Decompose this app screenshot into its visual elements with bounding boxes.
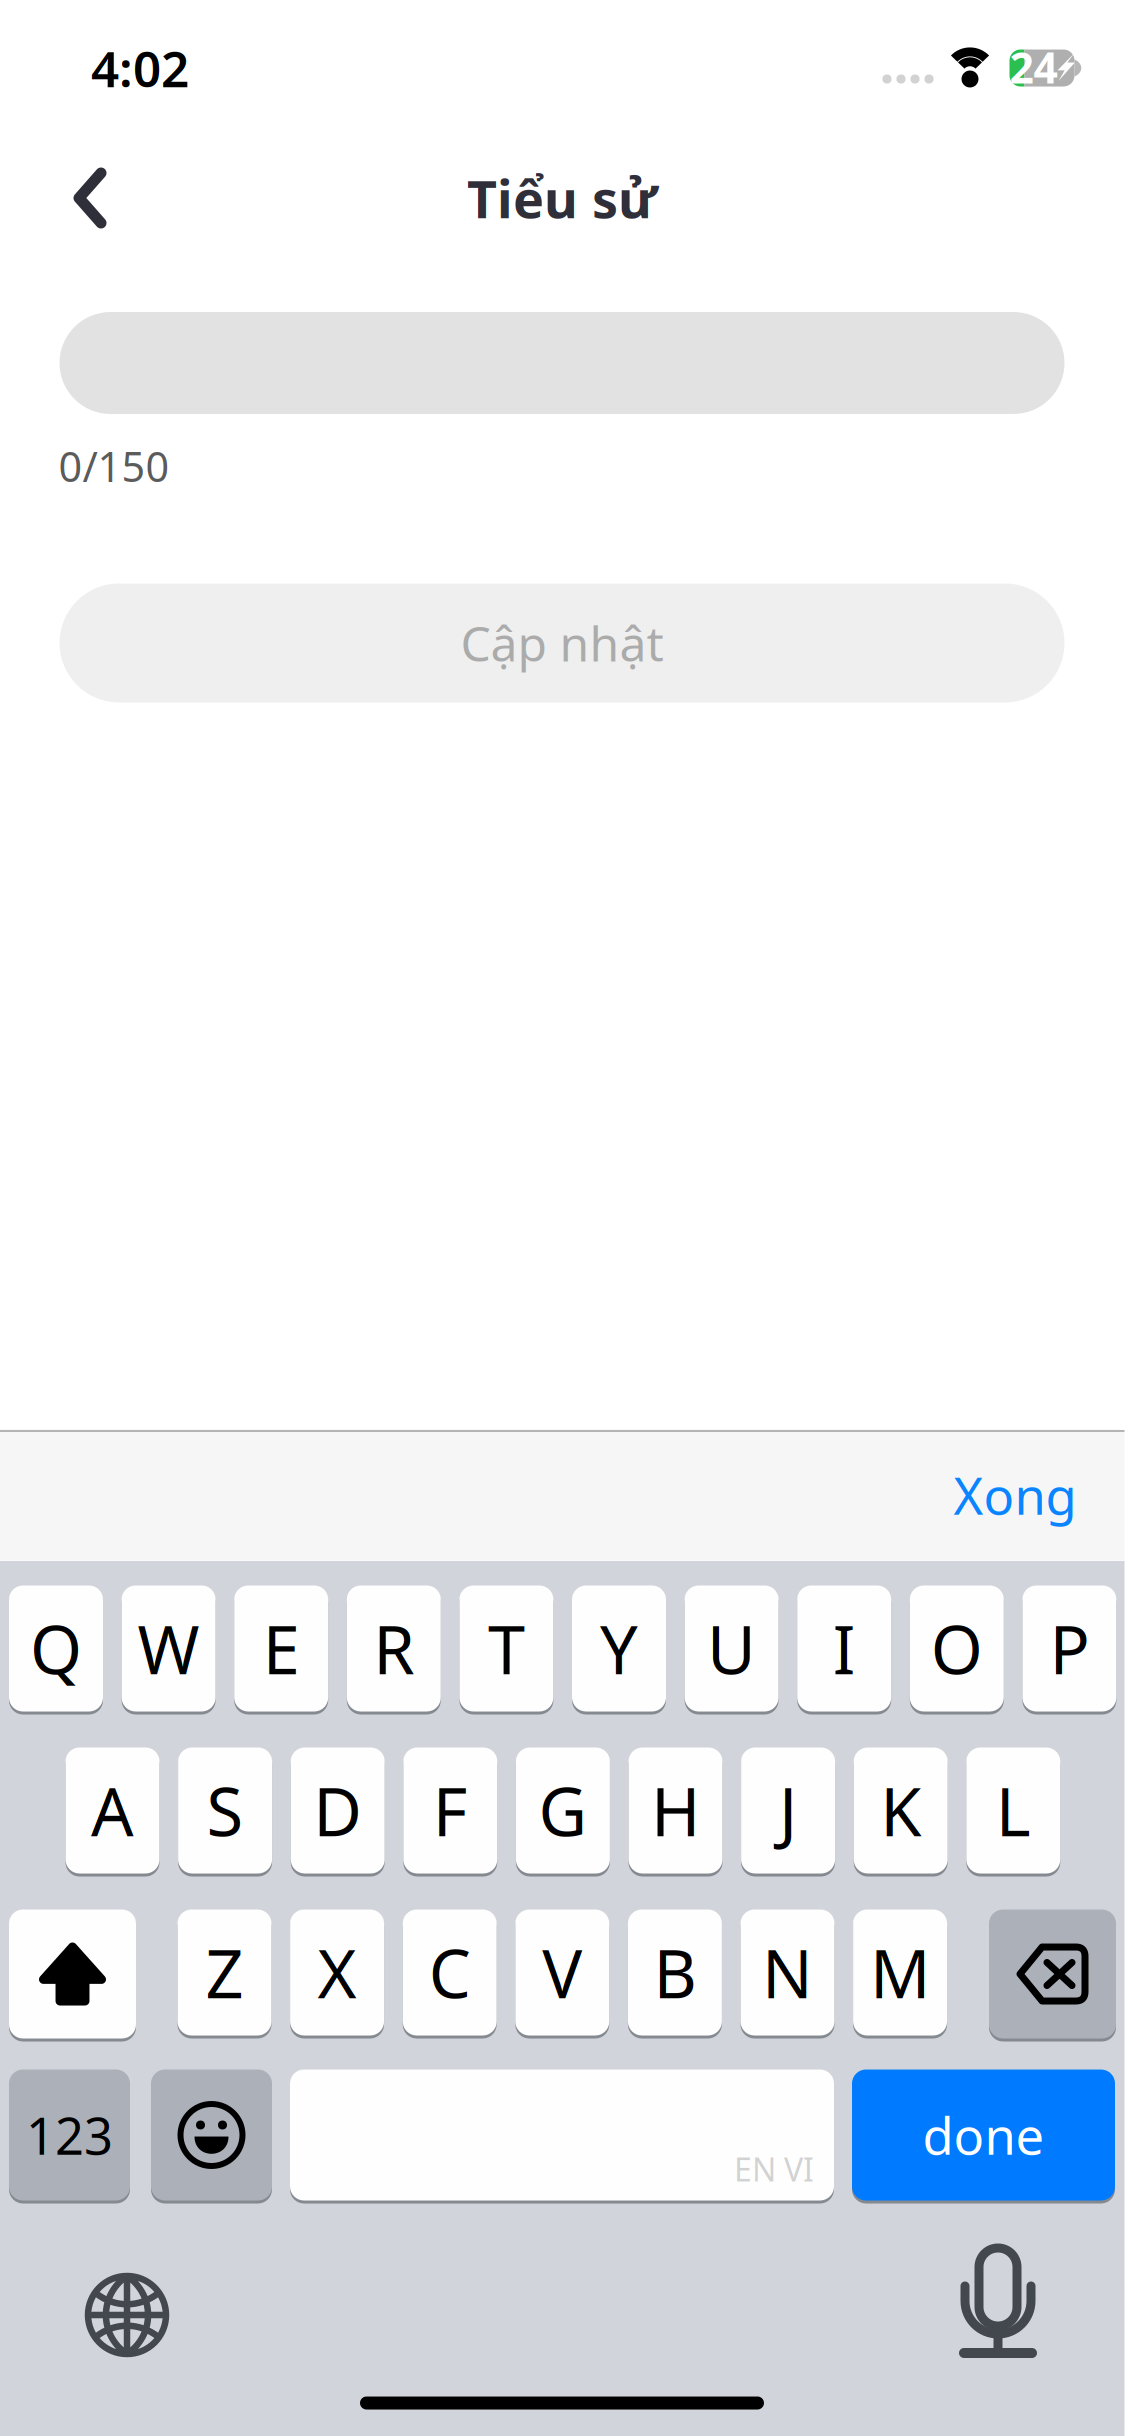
button[interactable]: O bbox=[910, 1584, 1004, 1713]
button[interactable]: Emoji bbox=[151, 2068, 272, 2202]
staticText: EN VI bbox=[734, 2148, 814, 2190]
staticText: P bbox=[1049, 1604, 1089, 1693]
button[interactable]: Cập nhật bbox=[59, 583, 1064, 702]
button[interactable]: I bbox=[797, 1584, 891, 1713]
staticText: 24 bbox=[1009, 39, 1057, 95]
staticText: T bbox=[488, 1604, 525, 1693]
button[interactable]: Bio bbox=[59, 312, 1064, 414]
staticText: M bbox=[870, 1928, 930, 2017]
button[interactable]: Y bbox=[572, 1584, 666, 1713]
staticText: Xong bbox=[953, 1461, 1076, 1529]
button[interactable]: E bbox=[234, 1584, 328, 1713]
button[interactable]: D bbox=[291, 1746, 385, 1875]
staticText: 123 bbox=[26, 2101, 113, 2169]
button[interactable]: X bbox=[290, 1908, 384, 2037]
staticText: done bbox=[922, 2101, 1044, 2169]
button[interactable]: B bbox=[628, 1908, 722, 2037]
staticText: X bbox=[318, 1928, 357, 2017]
staticText: L bbox=[996, 1766, 1031, 1855]
button[interactable]: done bbox=[852, 2068, 1115, 2202]
button[interactable]: Space bbox=[290, 2068, 834, 2202]
staticText: N bbox=[762, 1928, 813, 2017]
button[interactable]: T bbox=[459, 1584, 553, 1713]
button[interactable]: A bbox=[65, 1746, 159, 1875]
button[interactable]: H bbox=[628, 1746, 722, 1875]
button[interactable]: P bbox=[1022, 1584, 1116, 1713]
staticText: Z bbox=[205, 1928, 243, 2017]
button[interactable]: S bbox=[178, 1746, 272, 1875]
staticText: B bbox=[653, 1928, 696, 2017]
button[interactable]: Xong bbox=[917, 1429, 1112, 1561]
staticText: R bbox=[373, 1604, 414, 1693]
staticText: Cập nhật bbox=[460, 611, 663, 675]
staticText: E bbox=[263, 1604, 300, 1693]
staticText: J bbox=[779, 1766, 797, 1855]
staticText: Tiểu sử bbox=[467, 163, 657, 233]
staticText: Q bbox=[30, 1604, 82, 1693]
button[interactable]: K bbox=[854, 1746, 948, 1875]
button[interactable]: C bbox=[403, 1908, 497, 2037]
button[interactable]: Delete bbox=[989, 1908, 1116, 2040]
button[interactable]: Z bbox=[177, 1908, 271, 2037]
staticText: O bbox=[931, 1604, 983, 1693]
staticText: S bbox=[207, 1766, 244, 1855]
button[interactable]: F bbox=[403, 1746, 497, 1875]
staticText: H bbox=[651, 1766, 700, 1855]
button[interactable]: Dictation bbox=[940, 2236, 1056, 2378]
button[interactable]: M bbox=[853, 1908, 947, 2037]
button[interactable]: 123 bbox=[9, 2068, 130, 2202]
staticText: D bbox=[313, 1766, 362, 1855]
button[interactable]: U bbox=[685, 1584, 779, 1713]
button[interactable]: Shift bbox=[9, 1908, 136, 2040]
button[interactable]: J bbox=[741, 1746, 835, 1875]
button[interactable]: L bbox=[966, 1746, 1060, 1875]
button[interactable]: Back bbox=[32, 136, 148, 260]
button[interactable]: G bbox=[516, 1746, 610, 1875]
button[interactable]: W bbox=[122, 1584, 216, 1713]
staticText: 4:02 bbox=[91, 35, 189, 101]
staticText: U bbox=[707, 1604, 756, 1693]
staticText: C bbox=[429, 1928, 471, 2017]
button[interactable]: Q bbox=[9, 1584, 103, 1713]
staticText: K bbox=[880, 1766, 921, 1855]
staticText: V bbox=[542, 1928, 582, 2017]
button[interactable]: N bbox=[740, 1908, 834, 2037]
staticText: A bbox=[91, 1766, 134, 1855]
staticText: W bbox=[138, 1604, 200, 1693]
staticText: F bbox=[433, 1766, 468, 1855]
staticText: Y bbox=[600, 1604, 638, 1693]
staticText: 0/150 bbox=[58, 439, 169, 493]
staticText: I bbox=[833, 1604, 856, 1693]
button[interactable]: V bbox=[515, 1908, 609, 2037]
button[interactable]: R bbox=[347, 1584, 441, 1713]
button[interactable]: Next keyboard bbox=[66, 2254, 188, 2376]
staticText: G bbox=[538, 1766, 587, 1855]
